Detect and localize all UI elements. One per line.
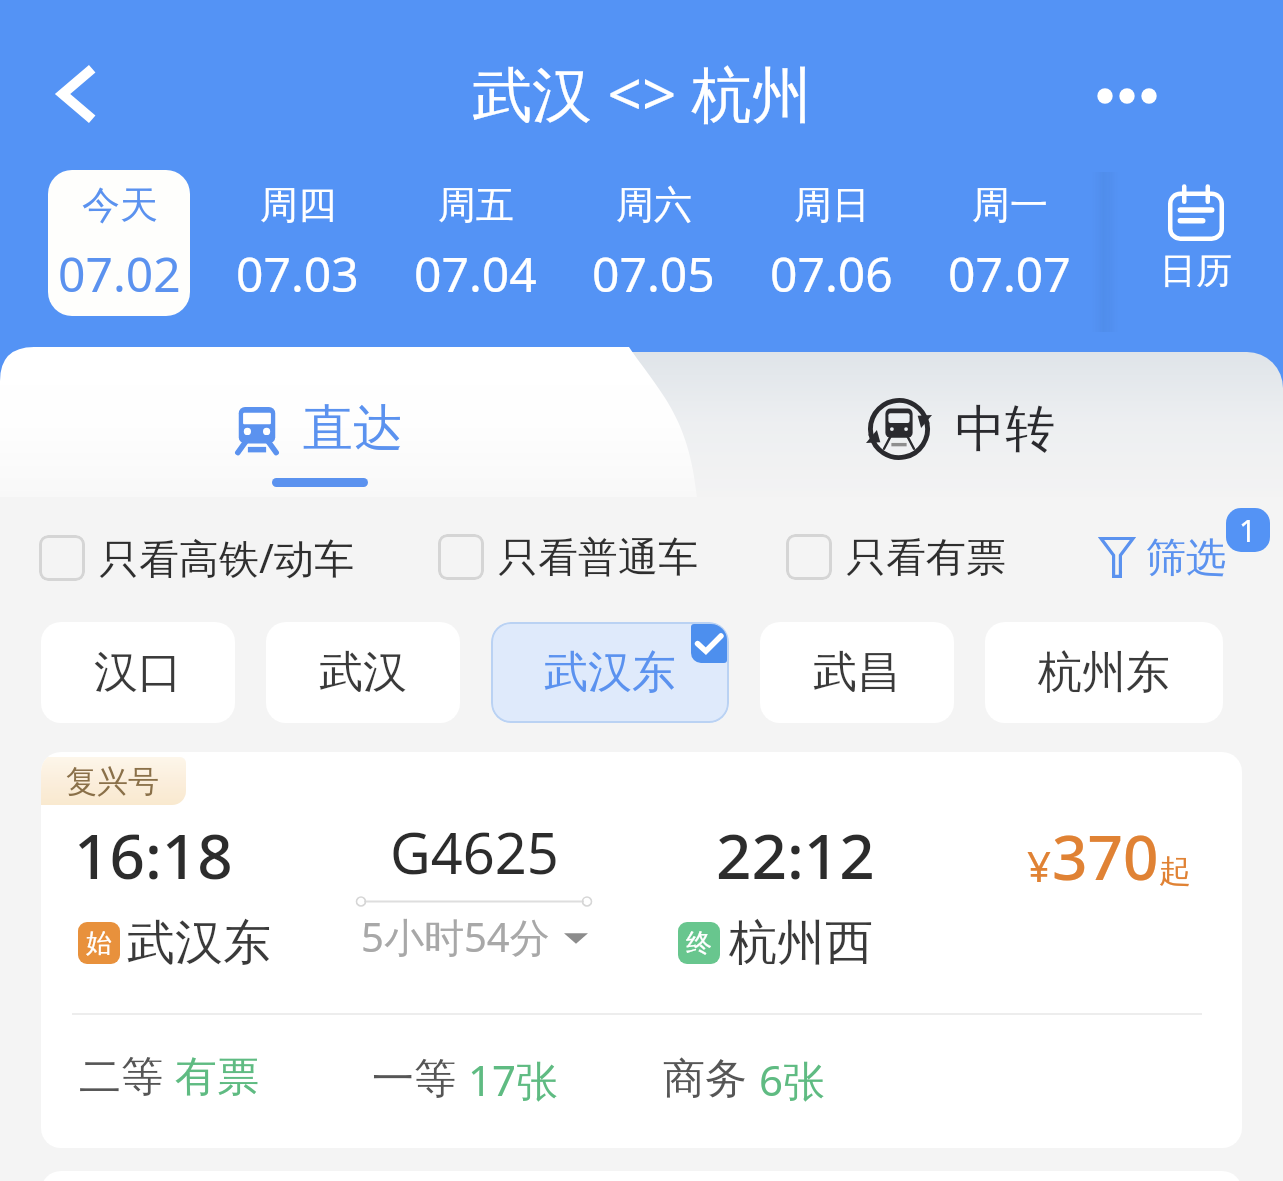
staticText: 07.05 bbox=[592, 241, 715, 306]
button[interactable]: 杭州东 bbox=[985, 622, 1223, 723]
staticText: 周一 bbox=[972, 181, 1048, 229]
staticText: 武汉 <> 杭州 bbox=[472, 52, 812, 134]
staticText: 武汉 bbox=[319, 645, 407, 700]
button[interactable]: 中转 bbox=[636, 347, 1283, 497]
staticText: 07.02 bbox=[58, 241, 181, 306]
staticText: 杭州东 bbox=[1038, 645, 1170, 700]
staticText: 汉口 bbox=[94, 645, 182, 700]
button[interactable]: Back bbox=[35, 52, 119, 136]
staticText: 复兴号 bbox=[66, 762, 159, 801]
staticText: 中转 bbox=[955, 398, 1055, 461]
staticText: 武昌 bbox=[813, 645, 901, 700]
staticText: 只看普通车 bbox=[498, 532, 698, 582]
staticText: 周五 bbox=[438, 181, 514, 229]
staticText: ¥ bbox=[1027, 837, 1052, 894]
button[interactable]: 武汉 bbox=[266, 622, 460, 723]
staticText: 16:18 bbox=[74, 813, 233, 897]
button[interactable]: 周六 bbox=[582, 170, 724, 316]
staticText: 07.06 bbox=[770, 241, 893, 306]
staticText: G4625 bbox=[390, 814, 559, 890]
staticText: 只看有票 bbox=[846, 532, 1006, 582]
staticText: 一等 bbox=[372, 1053, 456, 1106]
button[interactable]: More options bbox=[1093, 54, 1177, 138]
button[interactable]: 武昌 bbox=[760, 622, 954, 723]
button[interactable]: 今天 bbox=[48, 170, 190, 316]
button[interactable]: 复兴号 bbox=[41, 752, 1242, 1148]
staticText: 1 bbox=[1239, 510, 1257, 551]
staticText: 07.07 bbox=[948, 241, 1071, 306]
staticText: 武汉东 bbox=[544, 645, 676, 700]
staticText: 筛选 bbox=[1146, 532, 1226, 582]
staticText: 5小时54分 bbox=[361, 909, 550, 964]
button[interactable]: 周一 bbox=[938, 170, 1080, 316]
button[interactable]: 周日 bbox=[760, 170, 902, 316]
staticText: 始 bbox=[86, 927, 112, 960]
staticText: 07.03 bbox=[236, 241, 359, 306]
staticText: 只看高铁/动车 bbox=[99, 530, 354, 585]
staticText: 22:12 bbox=[716, 813, 875, 897]
staticText: 二等 bbox=[79, 1051, 163, 1104]
staticText: 武汉东 bbox=[127, 913, 271, 973]
staticText: 直达 bbox=[303, 397, 403, 460]
staticText: 6张 bbox=[759, 1051, 826, 1108]
button[interactable]: 直达 bbox=[0, 347, 636, 497]
button[interactable]: 只看有票 bbox=[786, 532, 1006, 582]
button[interactable]: 周五 bbox=[404, 170, 546, 316]
staticText: 370 bbox=[1052, 814, 1159, 898]
staticText: 有票 bbox=[175, 1051, 259, 1104]
staticText: 17张 bbox=[468, 1051, 559, 1108]
button[interactable]: Calendar bbox=[1105, 152, 1283, 327]
staticText: 终 bbox=[686, 927, 712, 960]
staticText: 今天 bbox=[82, 181, 158, 229]
staticText: 杭州西 bbox=[729, 913, 873, 973]
staticText: 周六 bbox=[616, 181, 692, 229]
staticText: 日历 bbox=[1160, 248, 1232, 293]
staticText: 周日 bbox=[794, 181, 870, 229]
button[interactable]: 筛选 bbox=[1100, 532, 1226, 582]
button[interactable]: 周四 bbox=[226, 170, 368, 316]
staticText: 周四 bbox=[260, 181, 336, 229]
staticText: 商务 bbox=[663, 1053, 747, 1106]
button[interactable]: 武汉东 bbox=[491, 622, 729, 723]
button[interactable]: 只看高铁/动车 bbox=[39, 530, 354, 585]
staticText: 起 bbox=[1159, 851, 1191, 891]
button[interactable]: 汉口 bbox=[41, 622, 235, 723]
staticText: 07.04 bbox=[414, 241, 537, 306]
button[interactable]: 只看普通车 bbox=[438, 532, 698, 582]
